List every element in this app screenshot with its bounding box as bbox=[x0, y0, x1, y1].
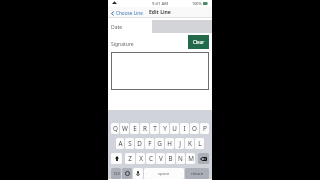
staticText: Date bbox=[111, 24, 123, 31]
staticText: Edit Line bbox=[149, 9, 171, 16]
button[interactable]: T bbox=[150, 123, 159, 134]
button[interactable]: O bbox=[190, 123, 199, 134]
button[interactable]: A bbox=[116, 138, 124, 149]
staticText: C bbox=[149, 154, 153, 163]
staticText: M bbox=[188, 154, 194, 163]
staticText: space bbox=[158, 171, 170, 177]
staticText: A bbox=[118, 139, 123, 148]
staticText: W bbox=[122, 124, 128, 133]
staticText: Y bbox=[163, 124, 167, 133]
staticText: X bbox=[139, 154, 143, 163]
button[interactable]: M bbox=[186, 153, 195, 164]
staticText: B bbox=[168, 154, 173, 163]
button[interactable]: F bbox=[145, 138, 154, 149]
button[interactable]: space bbox=[144, 168, 184, 179]
staticText: R bbox=[143, 124, 147, 133]
button[interactable]: E bbox=[130, 123, 139, 134]
button[interactable]: Backspace bbox=[198, 153, 209, 164]
button[interactable]: D bbox=[135, 138, 144, 149]
staticText: K bbox=[188, 139, 192, 148]
button[interactable]: B bbox=[166, 153, 175, 164]
button[interactable]: Z bbox=[125, 153, 135, 164]
staticText: P bbox=[203, 124, 207, 133]
button[interactable]: I bbox=[180, 123, 189, 134]
button[interactable]: J bbox=[175, 138, 184, 149]
staticText: V bbox=[159, 154, 163, 163]
staticText: O bbox=[192, 124, 197, 133]
button[interactable]: N bbox=[176, 153, 185, 164]
staticText: 123 bbox=[113, 171, 120, 176]
button[interactable]: W bbox=[120, 123, 129, 134]
staticText: Clear bbox=[193, 39, 205, 45]
button[interactable]: Q bbox=[111, 123, 119, 134]
staticText: Z bbox=[128, 154, 132, 163]
button[interactable]: K bbox=[185, 138, 194, 149]
staticText: D bbox=[137, 139, 142, 148]
button[interactable]: Y bbox=[160, 123, 169, 134]
button[interactable]: H bbox=[165, 138, 174, 149]
staticText: F bbox=[148, 139, 152, 148]
staticText: S bbox=[128, 139, 132, 148]
staticText: G bbox=[157, 139, 162, 148]
button[interactable]: Emoji bbox=[122, 168, 132, 179]
staticText: U bbox=[172, 124, 177, 133]
button[interactable]: V bbox=[156, 153, 165, 164]
staticText: E bbox=[133, 124, 137, 133]
button[interactable]: P bbox=[200, 123, 209, 134]
button[interactable]: G bbox=[155, 138, 164, 149]
staticText: J bbox=[179, 139, 181, 148]
button[interactable]: S bbox=[125, 138, 134, 149]
button[interactable]: C bbox=[146, 153, 155, 164]
staticText: 9:41 AM bbox=[152, 1, 169, 7]
button[interactable]: Clear bbox=[188, 35, 209, 49]
staticText: H bbox=[167, 139, 172, 148]
staticText: I bbox=[183, 124, 186, 133]
staticText: L bbox=[198, 139, 202, 148]
staticText: Q bbox=[113, 124, 118, 133]
button[interactable]: Shift bbox=[111, 153, 122, 164]
staticText: T bbox=[153, 124, 157, 133]
button[interactable]: L bbox=[195, 138, 204, 149]
staticText: N bbox=[178, 154, 183, 163]
button[interactable]: Numbers bbox=[111, 168, 121, 179]
button[interactable]: X bbox=[136, 153, 145, 164]
button[interactable] bbox=[111, 52, 209, 90]
button[interactable]: Dictation bbox=[133, 168, 143, 179]
button[interactable]: Return bbox=[185, 168, 209, 179]
staticText: return bbox=[191, 171, 204, 177]
button[interactable]: R bbox=[140, 123, 149, 134]
staticText: Signature bbox=[111, 41, 134, 48]
button[interactable]: U bbox=[170, 123, 179, 134]
staticText: 100% bbox=[192, 1, 202, 6]
button[interactable]: Choose Line bbox=[108, 8, 145, 18]
staticText: Choose Line bbox=[116, 10, 143, 16]
